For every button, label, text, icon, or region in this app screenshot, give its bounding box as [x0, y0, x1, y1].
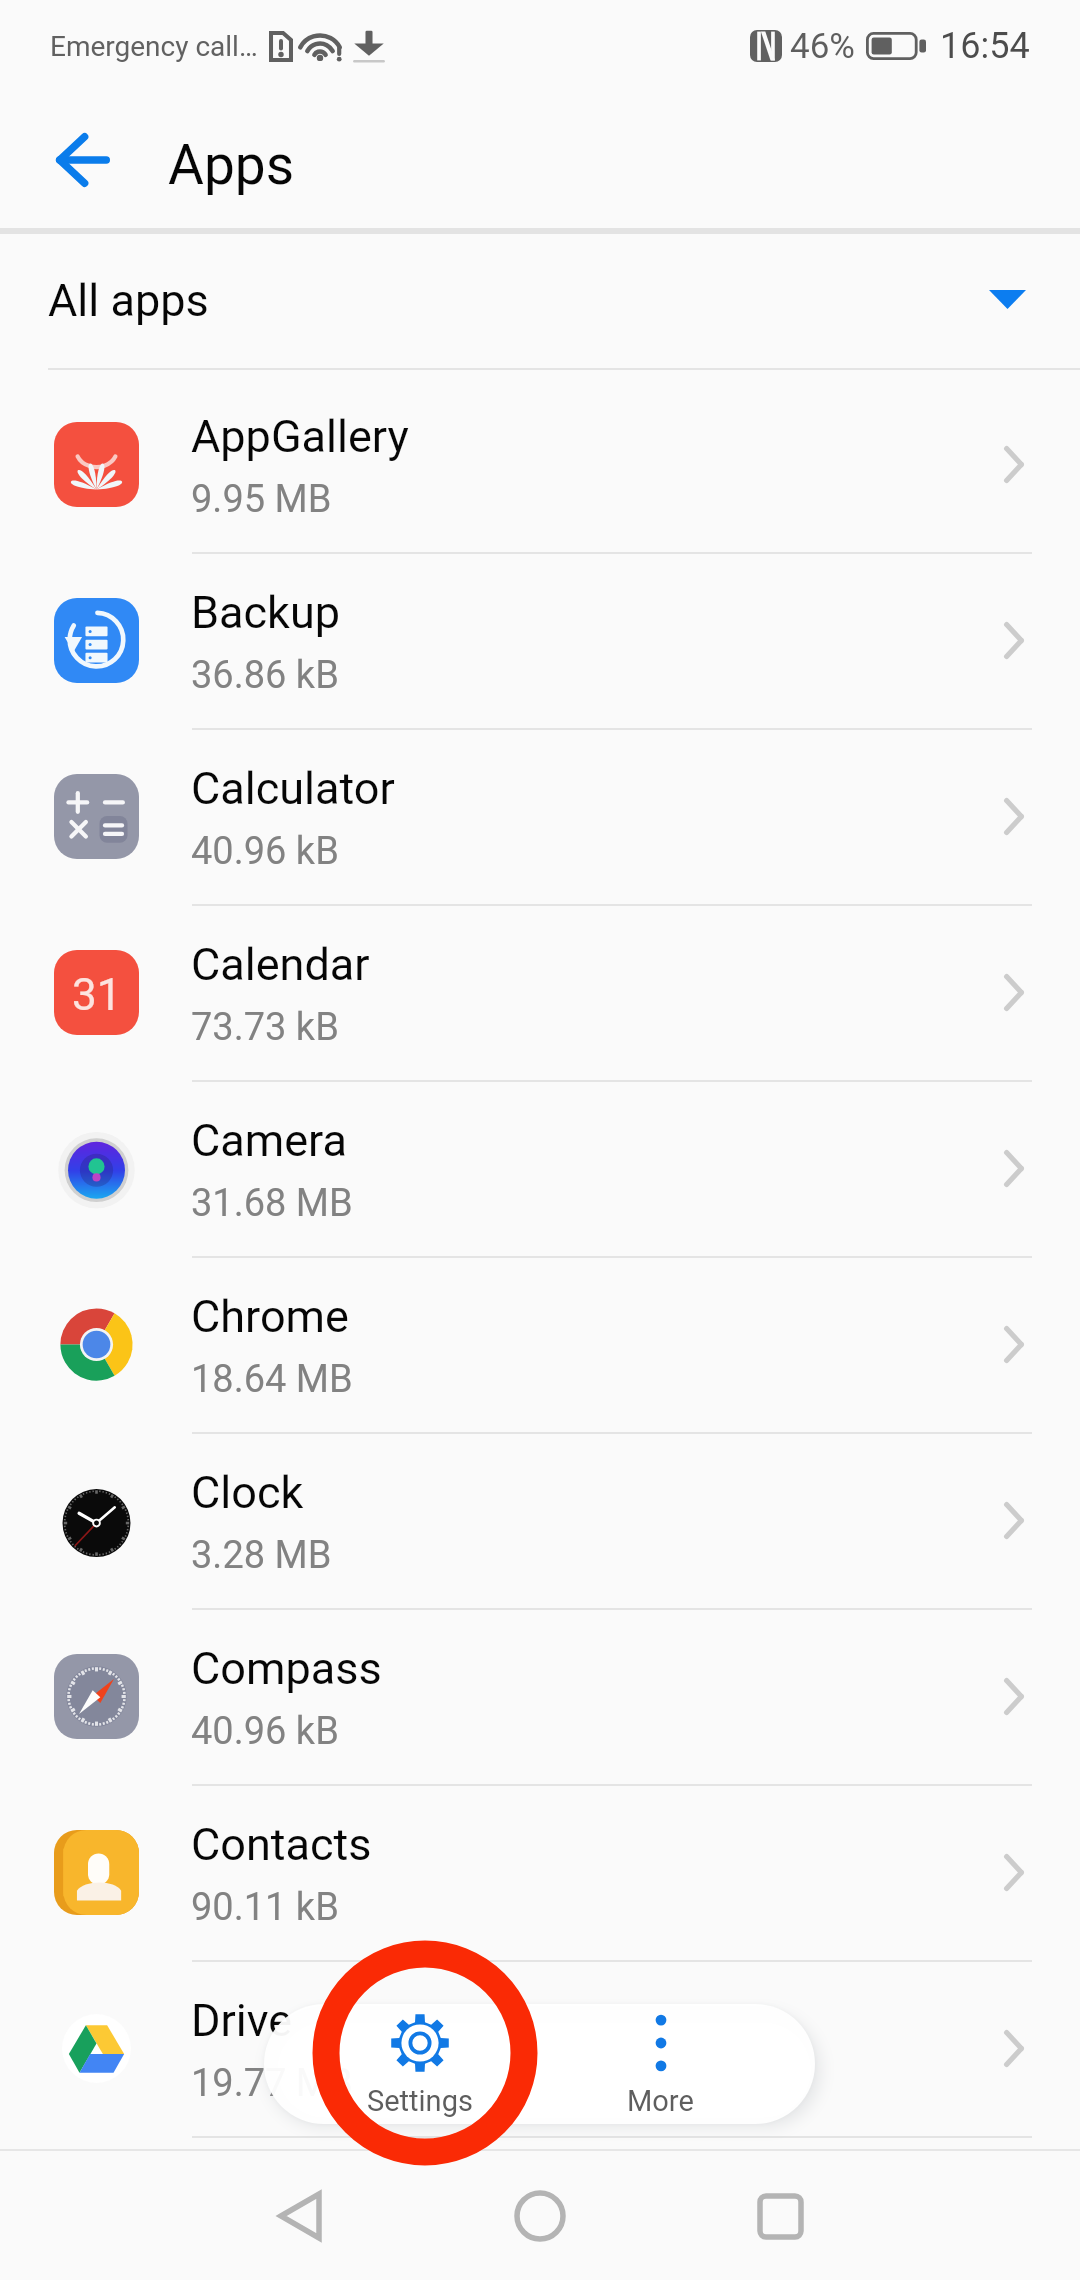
staticText: Camera: [191, 1114, 347, 1167]
button[interactable]: Recents: [726, 2162, 834, 2270]
button[interactable]: Contacts: [0, 1784, 1080, 1960]
button[interactable]: Camera: [0, 1080, 1080, 1256]
staticText: 90.11 kB: [191, 1885, 339, 1930]
staticText: Drive: [191, 1994, 293, 2047]
staticText: 46%: [790, 26, 855, 67]
staticText: 40.96 kB: [191, 829, 339, 874]
staticText: 31: [72, 969, 122, 1021]
button[interactable]: Compass: [0, 1608, 1080, 1784]
staticText: Apps: [168, 133, 295, 197]
staticText: Calculator: [191, 762, 395, 815]
staticText: Chrome: [191, 1290, 349, 1343]
button[interactable]: Backup: [0, 552, 1080, 728]
staticText: 9.95 MB: [191, 477, 332, 522]
button[interactable]: All apps: [0, 230, 1080, 368]
staticText: 36.86 kB: [191, 653, 339, 698]
button[interactable]: Drive: [0, 1960, 1080, 2136]
button[interactable]: 31: [0, 904, 1080, 1080]
staticText: Emergency call…: [50, 30, 258, 63]
button[interactable]: Chrome: [0, 1256, 1080, 1432]
staticText: 3.28 MB: [191, 1533, 332, 1578]
staticText: 31.68 MB: [191, 1181, 353, 1226]
staticText: 16:54: [940, 25, 1030, 67]
button[interactable]: Back: [28, 105, 138, 215]
staticText: Contacts: [191, 1818, 372, 1871]
staticText: Clock: [191, 1466, 304, 1519]
staticText: AppGallery: [191, 410, 409, 463]
button[interactable]: Calculator: [0, 728, 1080, 904]
button[interactable]: Clock: [0, 1432, 1080, 1608]
staticText: Compass: [191, 1642, 382, 1695]
staticText: Calendar: [191, 938, 370, 991]
button[interactable]: Home: [486, 2162, 594, 2270]
staticText: All apps: [48, 274, 209, 327]
staticText: 73.73 kB: [191, 1005, 339, 1050]
staticText: 19.77 MB: [191, 2061, 353, 2106]
button[interactable]: Settings: [310, 2004, 530, 2124]
button[interactable]: AppGallery: [0, 376, 1080, 552]
staticText: 18.64 MB: [191, 1357, 353, 1402]
button[interactable]: More: [550, 2004, 770, 2124]
button[interactable]: Back: [246, 2162, 354, 2270]
staticText: More: [627, 2084, 694, 2118]
staticText: 40.96 kB: [191, 1709, 339, 1754]
staticText: Settings: [367, 2084, 473, 2118]
staticText: Backup: [191, 586, 340, 639]
